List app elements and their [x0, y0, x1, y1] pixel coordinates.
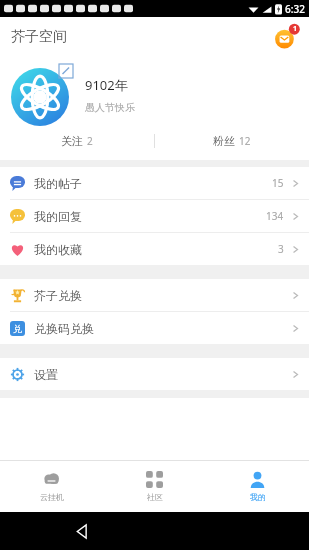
staticText: 134: [266, 209, 284, 223]
staticText: 兑换码兑换: [34, 321, 94, 336]
button[interactable]: 粉丝: [155, 126, 309, 156]
staticText: 粉丝: [213, 134, 235, 148]
staticText: 15: [272, 176, 284, 190]
staticText: 芥子空间: [11, 28, 67, 46]
staticText: 12: [239, 134, 251, 148]
staticText: 3: [278, 242, 284, 256]
staticText: 云挂机: [40, 492, 64, 502]
button[interactable]: 关注: [0, 126, 154, 156]
staticText: 我的: [250, 492, 266, 502]
staticText: 2: [87, 134, 93, 148]
staticText: 愚人节快乐: [85, 101, 135, 114]
staticText: 兑: [13, 323, 22, 334]
staticText: 关注: [61, 134, 83, 148]
button[interactable]: 我的收藏: [0, 233, 309, 265]
button[interactable]: 芥子兑换: [0, 279, 309, 311]
button[interactable]: 兑: [0, 312, 309, 344]
button[interactable]: 设置: [0, 358, 309, 390]
button[interactable]: 9102年: [11, 64, 297, 126]
staticText: 1: [293, 24, 298, 34]
button[interactable]: 云挂机: [0, 461, 103, 512]
staticText: 芥子兑换: [34, 288, 82, 303]
staticText: 9102年: [85, 76, 128, 94]
staticText: 我的回复: [34, 209, 82, 224]
button[interactable]: Messages: [273, 24, 299, 50]
staticText: 社区: [147, 492, 163, 502]
staticText: 6:32: [285, 2, 305, 16]
staticText: 设置: [34, 367, 58, 382]
button[interactable]: 我的回复: [0, 200, 309, 232]
button[interactable]: 我的: [206, 461, 309, 512]
staticText: 我的帖子: [34, 176, 82, 191]
button[interactable]: 我的帖子: [0, 167, 309, 199]
staticText: 我的收藏: [34, 242, 82, 257]
button[interactable]: 社区: [103, 461, 206, 512]
